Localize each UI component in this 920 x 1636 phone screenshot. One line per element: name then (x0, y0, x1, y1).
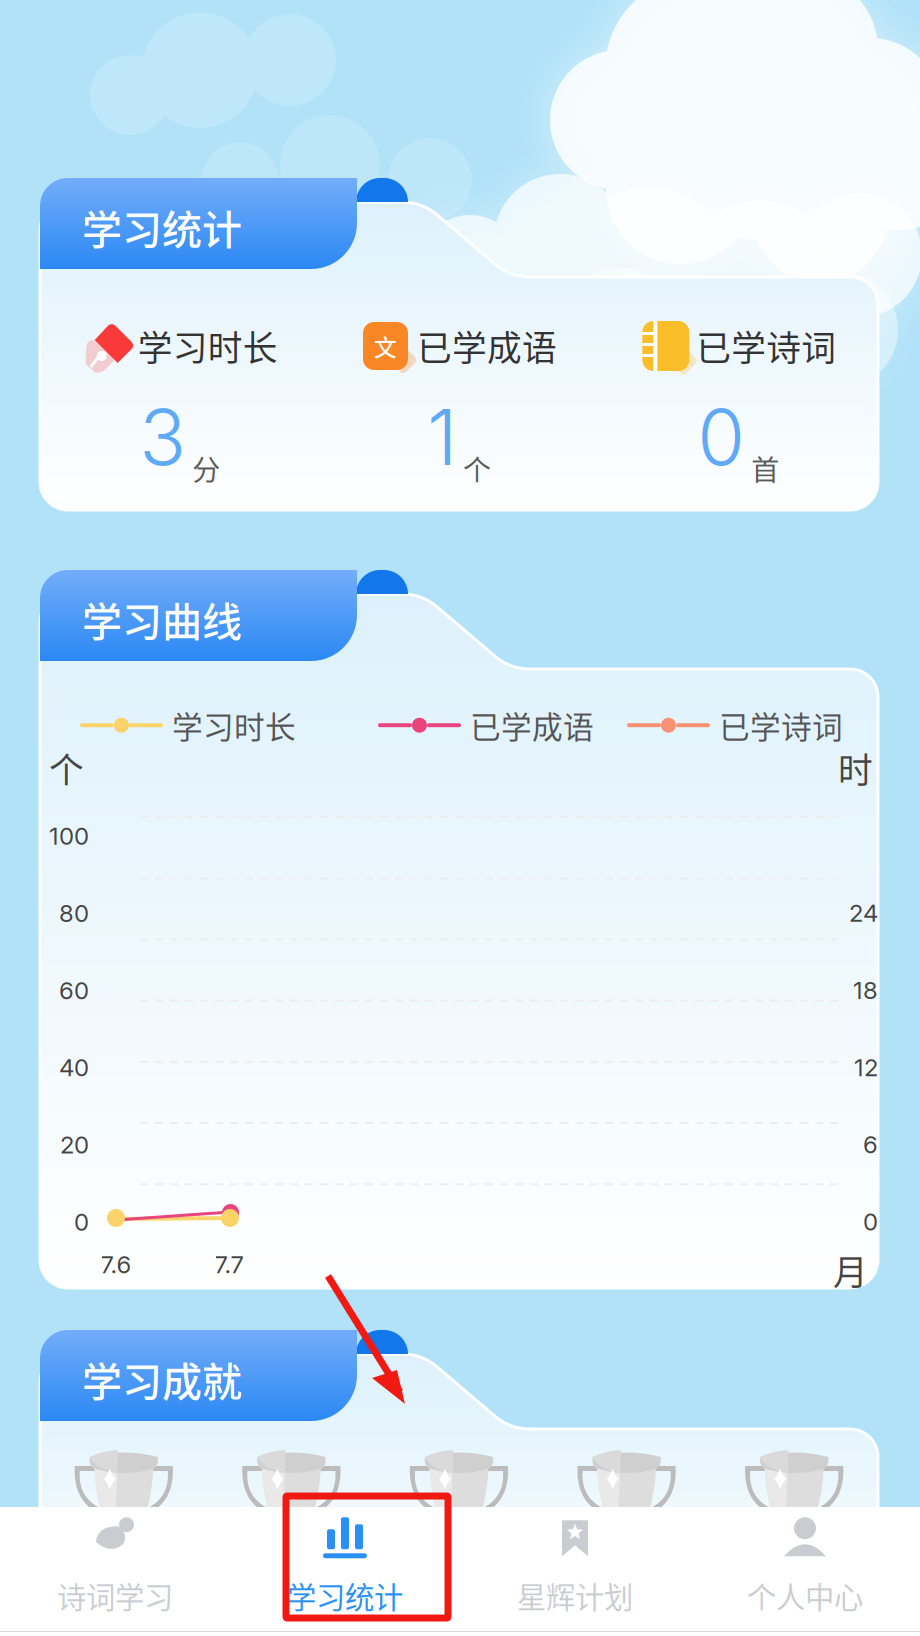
staticText: 已学诗词 (719, 703, 843, 747)
staticText: 0 (863, 1207, 878, 1236)
staticText: 时 (838, 743, 873, 793)
staticText: 100 (49, 821, 89, 850)
staticText: 学习成就 (82, 1350, 242, 1408)
staticText: 7.6 (100, 1250, 131, 1279)
staticText: 个 (463, 448, 491, 488)
button[interactable]: 星辉计划 (460, 1498, 690, 1636)
staticText: 学习时长 (138, 321, 278, 371)
staticText: 学习曲线 (82, 590, 242, 648)
staticText: 3 (139, 390, 186, 484)
staticText: 12 (854, 1053, 878, 1082)
staticText: 7.7 (214, 1250, 243, 1279)
staticText: 个 (49, 743, 84, 793)
staticText: 80 (59, 899, 89, 928)
button[interactable]: 诗词学习 (0, 1498, 230, 1636)
staticText: 个人中心 (747, 1574, 863, 1617)
staticText: 0 (697, 390, 745, 484)
staticText: 星辉计划 (517, 1574, 633, 1617)
button[interactable]: 个人中心 (690, 1498, 920, 1636)
staticText: 已学成语 (417, 321, 557, 371)
staticText: 分 (192, 448, 220, 488)
staticText: 20 (60, 1130, 89, 1159)
staticText: 学习统计 (82, 198, 242, 256)
staticText: 月 (833, 1245, 868, 1295)
staticText: 已学成语 (470, 703, 594, 747)
staticText: 18 (853, 976, 878, 1005)
staticText: 文 (374, 330, 397, 362)
staticText: 学习时长 (172, 703, 296, 747)
staticText: 已学诗词 (696, 321, 836, 371)
staticText: 1 (427, 390, 457, 484)
staticText: 6 (863, 1130, 878, 1159)
staticText: 首 (751, 448, 779, 488)
staticText: 40 (59, 1053, 89, 1082)
staticText: 24 (849, 898, 878, 927)
button[interactable]: 学习统计 (230, 1498, 460, 1636)
staticText: 0 (74, 1207, 89, 1236)
staticText: 学习统计 (287, 1574, 403, 1617)
staticText: 60 (59, 976, 89, 1005)
staticText: 诗词学习 (57, 1574, 173, 1617)
